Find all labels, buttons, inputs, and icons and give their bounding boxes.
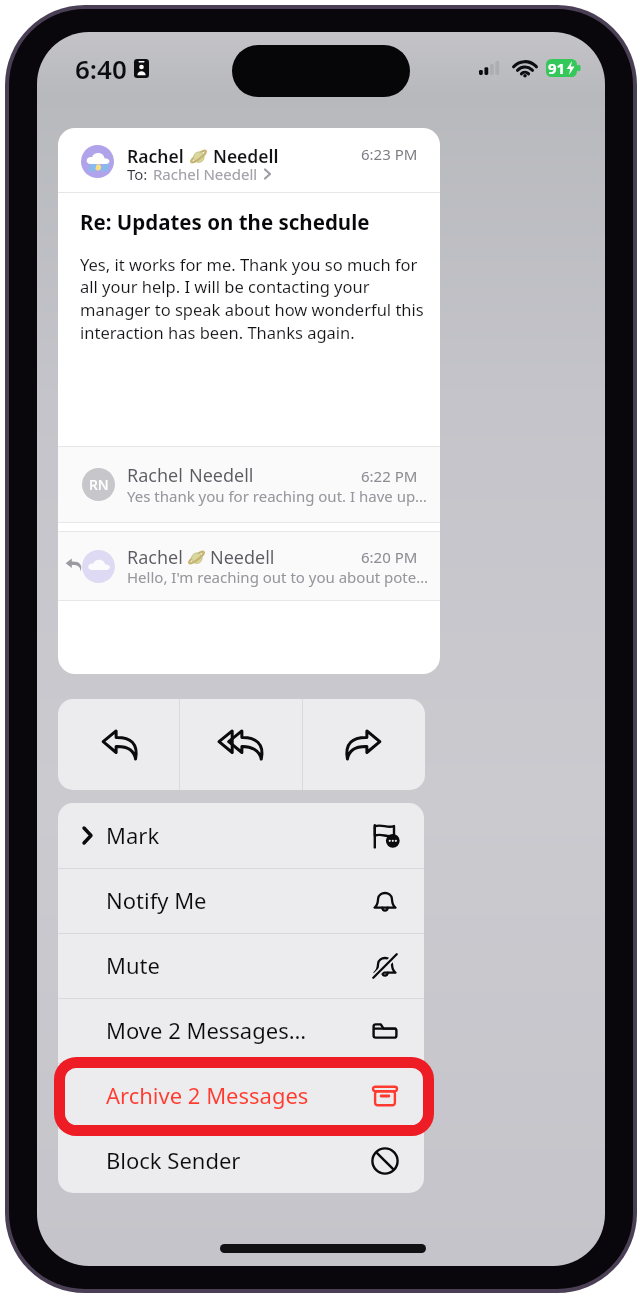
button[interactable]: Block Sender — [58, 1128, 424, 1193]
staticText: RN — [89, 475, 109, 494]
staticText: Rachel — [127, 144, 184, 168]
staticText: Archive 2 Messages — [106, 1080, 309, 1110]
staticText: Yes, it works for me. Thank you so much … — [80, 253, 424, 343]
button[interactable]: Mute — [58, 933, 424, 998]
staticText: Mute — [106, 950, 160, 980]
staticText: Move 2 Messages… — [106, 1015, 307, 1045]
button[interactable]: Reply — [58, 699, 179, 790]
staticText: 6:40 — [75, 51, 127, 86]
staticText: Needell — [210, 545, 275, 570]
staticText: Rachel Needell — [153, 164, 258, 184]
staticText: 91 — [548, 58, 566, 78]
button[interactable]: Rachel — [58, 128, 440, 674]
staticText: 6:20 PM — [361, 547, 418, 567]
button[interactable]: Mark — [58, 803, 424, 868]
staticText: Notify Me — [106, 885, 207, 915]
staticText: Needell — [213, 144, 279, 168]
button[interactable]: Forward — [303, 699, 425, 790]
button[interactable]: Move 2 Messages… — [58, 998, 424, 1063]
staticText: Rachel — [127, 545, 183, 570]
staticText: Rachel — [127, 463, 183, 488]
staticText: Yes thank you for reaching out. I have u… — [127, 486, 427, 506]
staticText: Block Sender — [106, 1145, 241, 1175]
button[interactable]: Rachel — [58, 532, 440, 600]
staticText: Hello, I'm reaching out to you about pot… — [127, 567, 429, 587]
staticText: 6:22 PM — [361, 466, 418, 486]
staticText: 6:23 PM — [361, 144, 418, 164]
button[interactable]: RN — [58, 447, 440, 522]
staticText: Re: Updates on the schedule — [80, 208, 370, 236]
staticText: To: — [127, 164, 148, 184]
button[interactable]: Reply All — [180, 699, 302, 790]
button[interactable]: Archive 2 Messages — [58, 1063, 424, 1128]
button[interactable]: Notify Me — [58, 868, 424, 933]
staticText: Needell — [189, 463, 254, 488]
staticText: Mark — [106, 820, 160, 850]
